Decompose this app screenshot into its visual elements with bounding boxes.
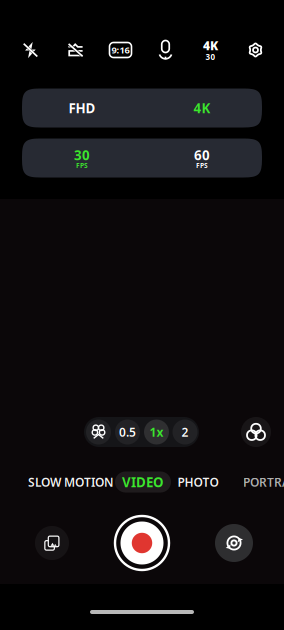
staticText: SLOW MOTION <box>28 474 114 490</box>
button[interactable]: Record <box>113 514 171 572</box>
button[interactable]: FHD <box>22 88 142 127</box>
button[interactable]: 60 <box>142 138 262 177</box>
staticText: PHOTO <box>177 474 218 490</box>
staticText: FPS <box>76 161 88 170</box>
staticText: 30 <box>205 52 215 62</box>
staticText: 60 <box>194 146 210 164</box>
button[interactable]: VIDEO <box>115 470 171 494</box>
button[interactable]: 4K 30 frames per second <box>188 33 233 67</box>
button[interactable]: 0.5 <box>113 417 142 447</box>
staticText: 0.5 <box>119 424 136 440</box>
button[interactable]: HDR off <box>53 33 98 67</box>
button[interactable]: PHOTO <box>174 470 222 494</box>
button[interactable]: Macro <box>84 417 113 447</box>
button[interactable]: PORTRAIT <box>241 470 284 494</box>
staticText: FHD <box>68 99 95 117</box>
button[interactable]: Aspect ratio 9 by 16 <box>98 33 143 67</box>
button[interactable]: Gallery <box>35 526 69 560</box>
staticText: 9:16 <box>111 44 129 56</box>
staticText: VIDEO <box>122 473 164 491</box>
button[interactable]: 1x <box>142 417 171 447</box>
button[interactable]: 4K <box>142 88 262 127</box>
staticText: 2 <box>181 424 188 440</box>
button[interactable]: Flip camera <box>215 524 253 562</box>
staticText: 4K <box>193 99 210 117</box>
staticText: FPS <box>196 161 208 170</box>
button[interactable]: Microphone <box>143 33 188 67</box>
button[interactable]: Settings <box>233 33 278 67</box>
staticText: 30 <box>74 146 90 164</box>
button[interactable]: SLOW MOTION <box>28 470 114 494</box>
button[interactable]: Filters <box>241 417 271 447</box>
staticText: 1x <box>149 424 163 440</box>
button[interactable]: 2 <box>171 417 199 447</box>
staticText: 4K <box>203 38 218 54</box>
staticText: PORTRAIT <box>243 474 284 490</box>
button[interactable]: Flash off <box>8 33 53 67</box>
button[interactable]: 30 <box>22 138 142 177</box>
